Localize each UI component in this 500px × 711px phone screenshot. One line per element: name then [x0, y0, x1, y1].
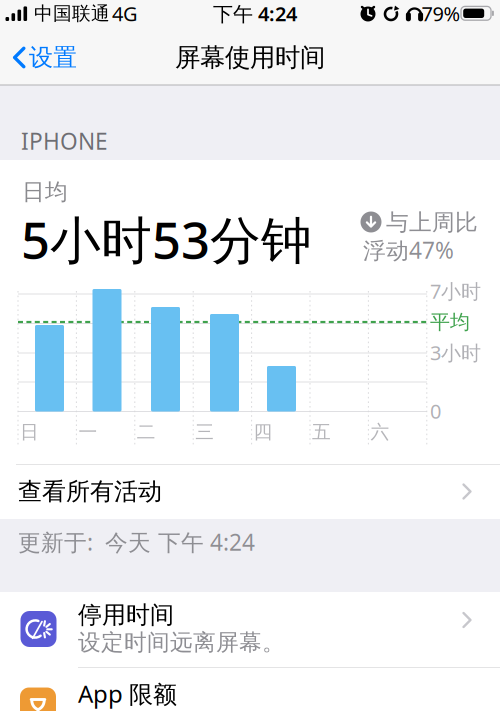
staticText: 二	[137, 420, 156, 443]
staticText: 一	[78, 420, 97, 443]
staticText: 停用时间	[78, 600, 174, 630]
staticText: 查看所有活动	[18, 477, 162, 506]
staticText: 79%	[421, 0, 460, 27]
staticText: 日	[20, 420, 39, 443]
staticText: App 限额	[78, 677, 177, 709]
staticText: 更新于: 今天 下午 4:24	[18, 527, 255, 557]
staticText: 0	[430, 398, 441, 424]
button[interactable]: App 限额	[0, 668, 500, 711]
button[interactable]: 查看所有活动	[0, 465, 500, 518]
staticText: 5小时53分钟	[21, 205, 312, 273]
staticText: IPHONE	[21, 126, 108, 156]
staticText: 平均	[430, 310, 470, 334]
staticText: 与上周比	[386, 209, 478, 236]
staticText: 五	[312, 420, 331, 443]
staticText: 4G	[112, 0, 138, 27]
staticText: 下午 4:24	[213, 0, 297, 27]
staticText: 四	[254, 420, 273, 443]
staticText: 3小时	[430, 339, 481, 366]
staticText: 日均	[22, 178, 68, 206]
button[interactable]: 设置	[0, 35, 110, 79]
staticText: 7小时	[430, 278, 481, 304]
staticText: 中国联通	[34, 2, 110, 25]
staticText: 设定时间远离屏幕。	[78, 629, 285, 656]
staticText: 设置	[29, 43, 77, 72]
button[interactable]: 停用时间	[0, 592, 500, 668]
staticText: 屏幕使用时间	[175, 42, 325, 73]
staticText: 浮动47%	[363, 235, 454, 265]
staticText: 六	[370, 420, 389, 443]
staticText: 三	[195, 420, 214, 443]
